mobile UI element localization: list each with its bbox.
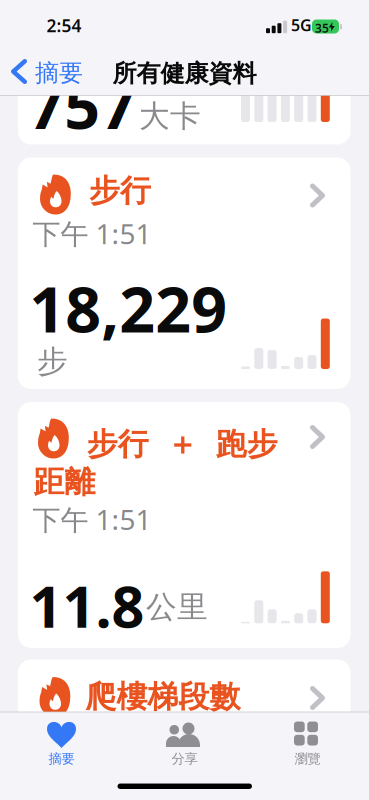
staticText: 距離 — [34, 463, 96, 501]
button[interactable]: 步行 ＋ 跑步 — [18, 402, 350, 648]
button[interactable]: 爬樓梯段數 — [18, 659, 350, 759]
button[interactable]: 摘要 — [11, 57, 89, 87]
staticText: 18,229 — [29, 266, 227, 350]
staticText: 公里 — [146, 588, 208, 626]
staticText: 35 — [315, 20, 329, 36]
staticText: 下午 1:51 — [32, 215, 151, 252]
staticText: 所有健康資料 — [112, 59, 256, 88]
button[interactable]: 瀏覽 — [246, 718, 369, 781]
staticText: 5G — [291, 14, 312, 36]
button[interactable]: 757 — [18, 50, 350, 144]
button[interactable]: 摘要 — [0, 718, 123, 781]
staticText: 步行 — [89, 172, 151, 210]
staticText: 11.8 — [30, 567, 145, 643]
staticText: 2:54 — [47, 14, 82, 37]
staticText: 瀏覽 — [294, 750, 320, 767]
staticText: 下午 1:51 — [32, 501, 151, 538]
button[interactable]: 分享 — [123, 718, 246, 781]
staticText: 摘要 — [35, 58, 83, 88]
staticText: 爬樓梯段數 — [85, 678, 240, 716]
staticText: 分享 — [171, 750, 197, 767]
staticText: 757 — [28, 63, 136, 146]
staticText: 大卡 — [139, 97, 201, 135]
button[interactable]: 步行 — [18, 157, 350, 389]
staticText: 步行 ＋ 跑步 — [87, 425, 278, 463]
staticText: 摘要 — [48, 750, 74, 767]
staticText: 步 — [37, 343, 68, 380]
